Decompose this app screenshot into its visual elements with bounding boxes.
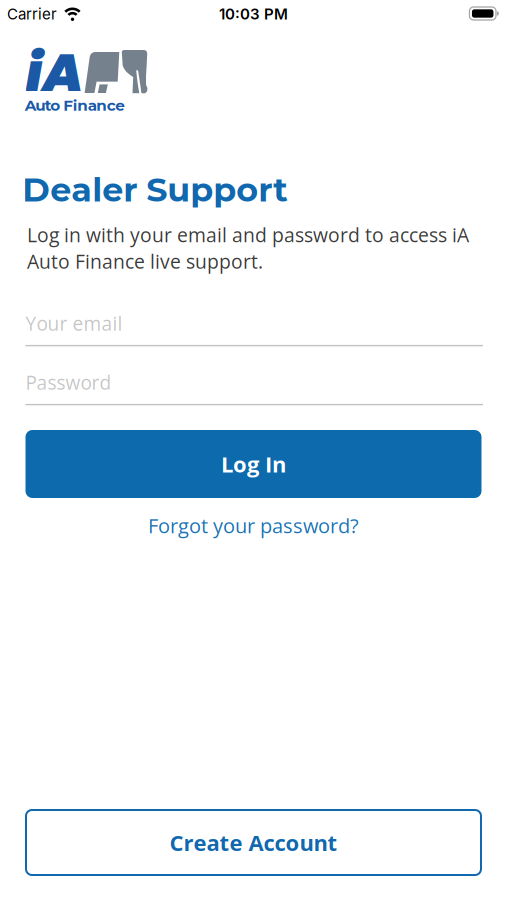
staticText: Auto Finance <box>25 96 125 114</box>
staticText: Log in with your email and password to a… <box>27 222 469 274</box>
staticText: 10:03 PM <box>219 5 288 23</box>
staticText: Create Account <box>169 827 337 857</box>
staticText: iA <box>25 36 83 110</box>
staticText: Carrier <box>7 5 57 23</box>
button[interactable]: Password <box>25 369 483 405</box>
button[interactable]: Create Account <box>26 810 481 875</box>
button[interactable]: Forgot your password? <box>148 512 359 539</box>
button[interactable]: Log In <box>25 430 481 498</box>
staticText: Log In <box>221 449 286 479</box>
button[interactable]: Your email <box>25 310 483 346</box>
staticText: Dealer Support <box>22 169 288 210</box>
staticText: Forgot your password? <box>148 512 359 539</box>
staticText: Your email <box>25 310 122 336</box>
staticText: Password <box>25 369 111 395</box>
